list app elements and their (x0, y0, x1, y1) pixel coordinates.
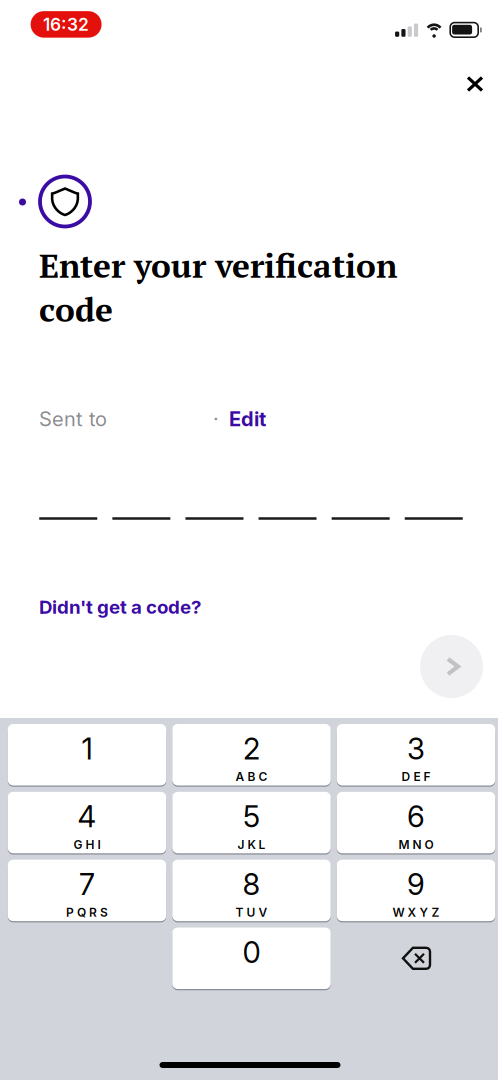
staticText: 4 (77, 799, 96, 834)
button[interactable]: 7 (8, 860, 166, 921)
staticText: 2 (243, 731, 260, 766)
staticText: J K L (237, 837, 265, 852)
button[interactable]: 4 (8, 792, 166, 853)
staticText: Enter your verification code (39, 243, 397, 331)
button[interactable]: 3 (337, 724, 495, 785)
button[interactable]: 6 (337, 792, 495, 853)
button[interactable]: Continue (420, 635, 483, 698)
staticText: 7 (79, 867, 95, 902)
button[interactable]: 5 (172, 792, 331, 853)
staticText: 6 (407, 799, 425, 834)
button[interactable]: Edit (229, 407, 269, 431)
button[interactable]: 9 (337, 860, 495, 921)
button[interactable]: 2 (172, 724, 331, 785)
button[interactable]: Delete (337, 927, 495, 989)
staticText: Didn't get a code? (39, 596, 201, 618)
staticText: 9 (407, 867, 425, 902)
staticText: W X Y Z (392, 905, 439, 920)
staticText: 16:32 (43, 14, 89, 35)
button[interactable]: 0 (172, 927, 331, 989)
staticText: 0 (242, 934, 260, 970)
staticText: 8 (242, 867, 260, 902)
staticText: T U V (235, 905, 267, 920)
staticText: G H I (73, 837, 100, 852)
staticText: · (213, 407, 219, 431)
staticText: M N O (398, 837, 433, 852)
button[interactable]: 1 (8, 724, 166, 785)
button[interactable]: Close (455, 64, 495, 103)
staticText: 3 (407, 731, 425, 766)
staticText: Sent to (39, 407, 107, 431)
staticText: 5 (243, 799, 260, 834)
button[interactable]: Didn't get a code? (39, 594, 219, 620)
button[interactable]: 8 (172, 860, 331, 921)
staticText: P Q R S (66, 905, 108, 920)
staticText: 1 (81, 731, 92, 766)
staticText: A B C (235, 769, 267, 784)
staticText: D E F (401, 769, 430, 784)
staticText: Edit (229, 407, 266, 431)
